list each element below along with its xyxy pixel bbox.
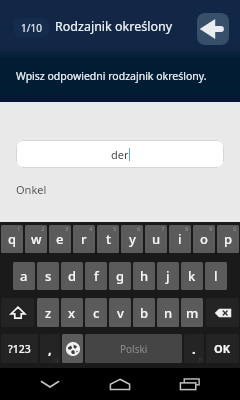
staticText: 9 [209,225,213,233]
staticText: h [140,267,149,285]
staticText: i [178,230,182,248]
staticText: 1/10 [21,21,42,35]
staticText: , [48,340,52,358]
button[interactable]: OK [206,334,239,363]
button[interactable]: c [85,298,107,327]
staticText: 0 [233,225,237,233]
staticText: z [45,304,52,322]
staticText: 2 [41,225,45,233]
staticText: d [68,267,77,285]
staticText: w [31,230,42,248]
button[interactable]: v [109,298,131,327]
button[interactable]: z [37,298,59,327]
button[interactable]: h [133,262,155,290]
staticText: Wpisz odpowiedni rodzajnik określony. [16,69,207,83]
staticText: c [93,304,100,322]
staticText: g [116,267,125,285]
button[interactable]: Hide keyboard [26,368,74,400]
staticText: o [200,230,208,248]
button[interactable]: k [181,262,203,290]
button[interactable]: Backspace [206,298,239,327]
staticText: k [188,267,196,285]
button[interactable]: o [193,225,215,253]
staticText: y [129,230,136,248]
button[interactable]: p [217,225,239,253]
staticText: OK [214,341,231,356]
button[interactable]: u [145,225,167,253]
button[interactable]: Recent apps [166,368,214,400]
staticText: 5 [113,225,117,233]
staticText: b [140,304,149,322]
staticText: 3 [65,225,69,233]
button[interactable]: d [61,262,83,290]
staticText: f [94,267,99,285]
staticText: m [186,304,199,322]
button[interactable]: y [121,225,143,253]
staticText: v [117,304,124,322]
staticText: q [8,230,17,248]
staticText: ?123 [8,342,31,356]
staticText: :-) [54,357,59,363]
staticText: l [214,267,218,285]
staticText: 1 [17,225,21,233]
button[interactable]: Home [96,368,144,400]
staticText: n [164,304,173,322]
staticText: 4 [89,225,93,233]
staticText: e [56,230,64,248]
staticText: 7 [161,225,165,233]
staticText: !? [199,357,203,363]
staticText: x [68,304,76,322]
button[interactable]: g [109,262,131,290]
button[interactable]: x [61,298,83,327]
button[interactable]: 1/10 [14,18,49,37]
staticText: Rodzajnik określony [55,18,173,35]
button[interactable]: ?123 [1,334,38,363]
staticText: . [192,340,196,358]
button[interactable]: m [181,298,203,327]
button[interactable]: q [1,225,23,253]
button[interactable]: e [49,225,71,253]
staticText: t [106,230,111,248]
button[interactable]: Comma [40,334,60,363]
button[interactable]: r [73,225,95,253]
button[interactable]: t [97,225,119,253]
staticText: 6 [137,225,141,233]
button[interactable]: f [85,262,107,290]
staticText: p [224,230,233,248]
button[interactable]: der [16,140,224,168]
staticText: r [81,230,87,248]
staticText: der [111,147,129,162]
button[interactable]: Change language [62,334,83,363]
button[interactable]: i [169,225,191,253]
button[interactable]: Polski [85,334,182,363]
button[interactable]: Shift [1,298,34,327]
staticText: j [166,267,170,285]
staticText: a [20,267,28,285]
button[interactable]: b [133,298,155,327]
button[interactable]: j [157,262,179,290]
staticText: Polski [120,342,148,356]
button[interactable]: w [25,225,47,253]
button[interactable]: l [205,262,227,290]
staticText: 8 [185,225,189,233]
staticText: Onkel [16,182,47,197]
staticText: u [152,230,161,248]
button[interactable]: n [157,298,179,327]
button[interactable]: s [37,262,59,290]
button[interactable]: Back [197,13,229,45]
button[interactable]: a [13,262,35,290]
button[interactable]: Period [184,334,204,363]
staticText: s [45,267,52,285]
